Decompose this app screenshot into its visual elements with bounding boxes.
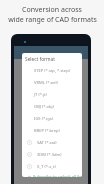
button[interactable]: JT (*.jt) bbox=[22, 89, 82, 101]
staticText: STEP (*.stp, *.step) bbox=[34, 68, 70, 74]
staticText: IGS (*.igs) bbox=[34, 116, 54, 122]
staticText: SAT (*.sat) bbox=[37, 140, 57, 146]
staticText: X_T (*.x_t) bbox=[37, 164, 56, 170]
staticText: OBJ (*.obj) bbox=[34, 104, 54, 110]
button[interactable]: SAT (*.sat) bbox=[22, 137, 82, 149]
button[interactable]: 3DM (*.3dm) bbox=[22, 149, 82, 161]
button[interactable]: BREP (*.brep) bbox=[22, 125, 82, 137]
staticText: JT (*.jt) bbox=[34, 92, 47, 98]
staticText: Subscribe to unlock all formats bbox=[33, 174, 82, 177]
button[interactable]: VRML (*.wrl) bbox=[22, 77, 82, 89]
staticText: BREP (*.brep) bbox=[34, 128, 60, 134]
button[interactable]: Subscribe to unlock all formats bbox=[22, 173, 82, 177]
button[interactable]: STEP (*.stp, *.step) bbox=[22, 65, 82, 77]
staticText: Conversion across bbox=[22, 5, 82, 15]
staticText: 3DM (*.3dm) bbox=[37, 152, 62, 158]
staticText: VRML (*.wrl) bbox=[34, 80, 58, 86]
staticText: wide range of CAD formats bbox=[8, 15, 97, 25]
button[interactable]: X_T (*.x_t) bbox=[22, 161, 82, 173]
button[interactable]: IGS (*.igs) bbox=[22, 113, 82, 125]
button[interactable]: OBJ (*.obj) bbox=[22, 101, 82, 113]
staticText: Select format bbox=[25, 56, 56, 63]
